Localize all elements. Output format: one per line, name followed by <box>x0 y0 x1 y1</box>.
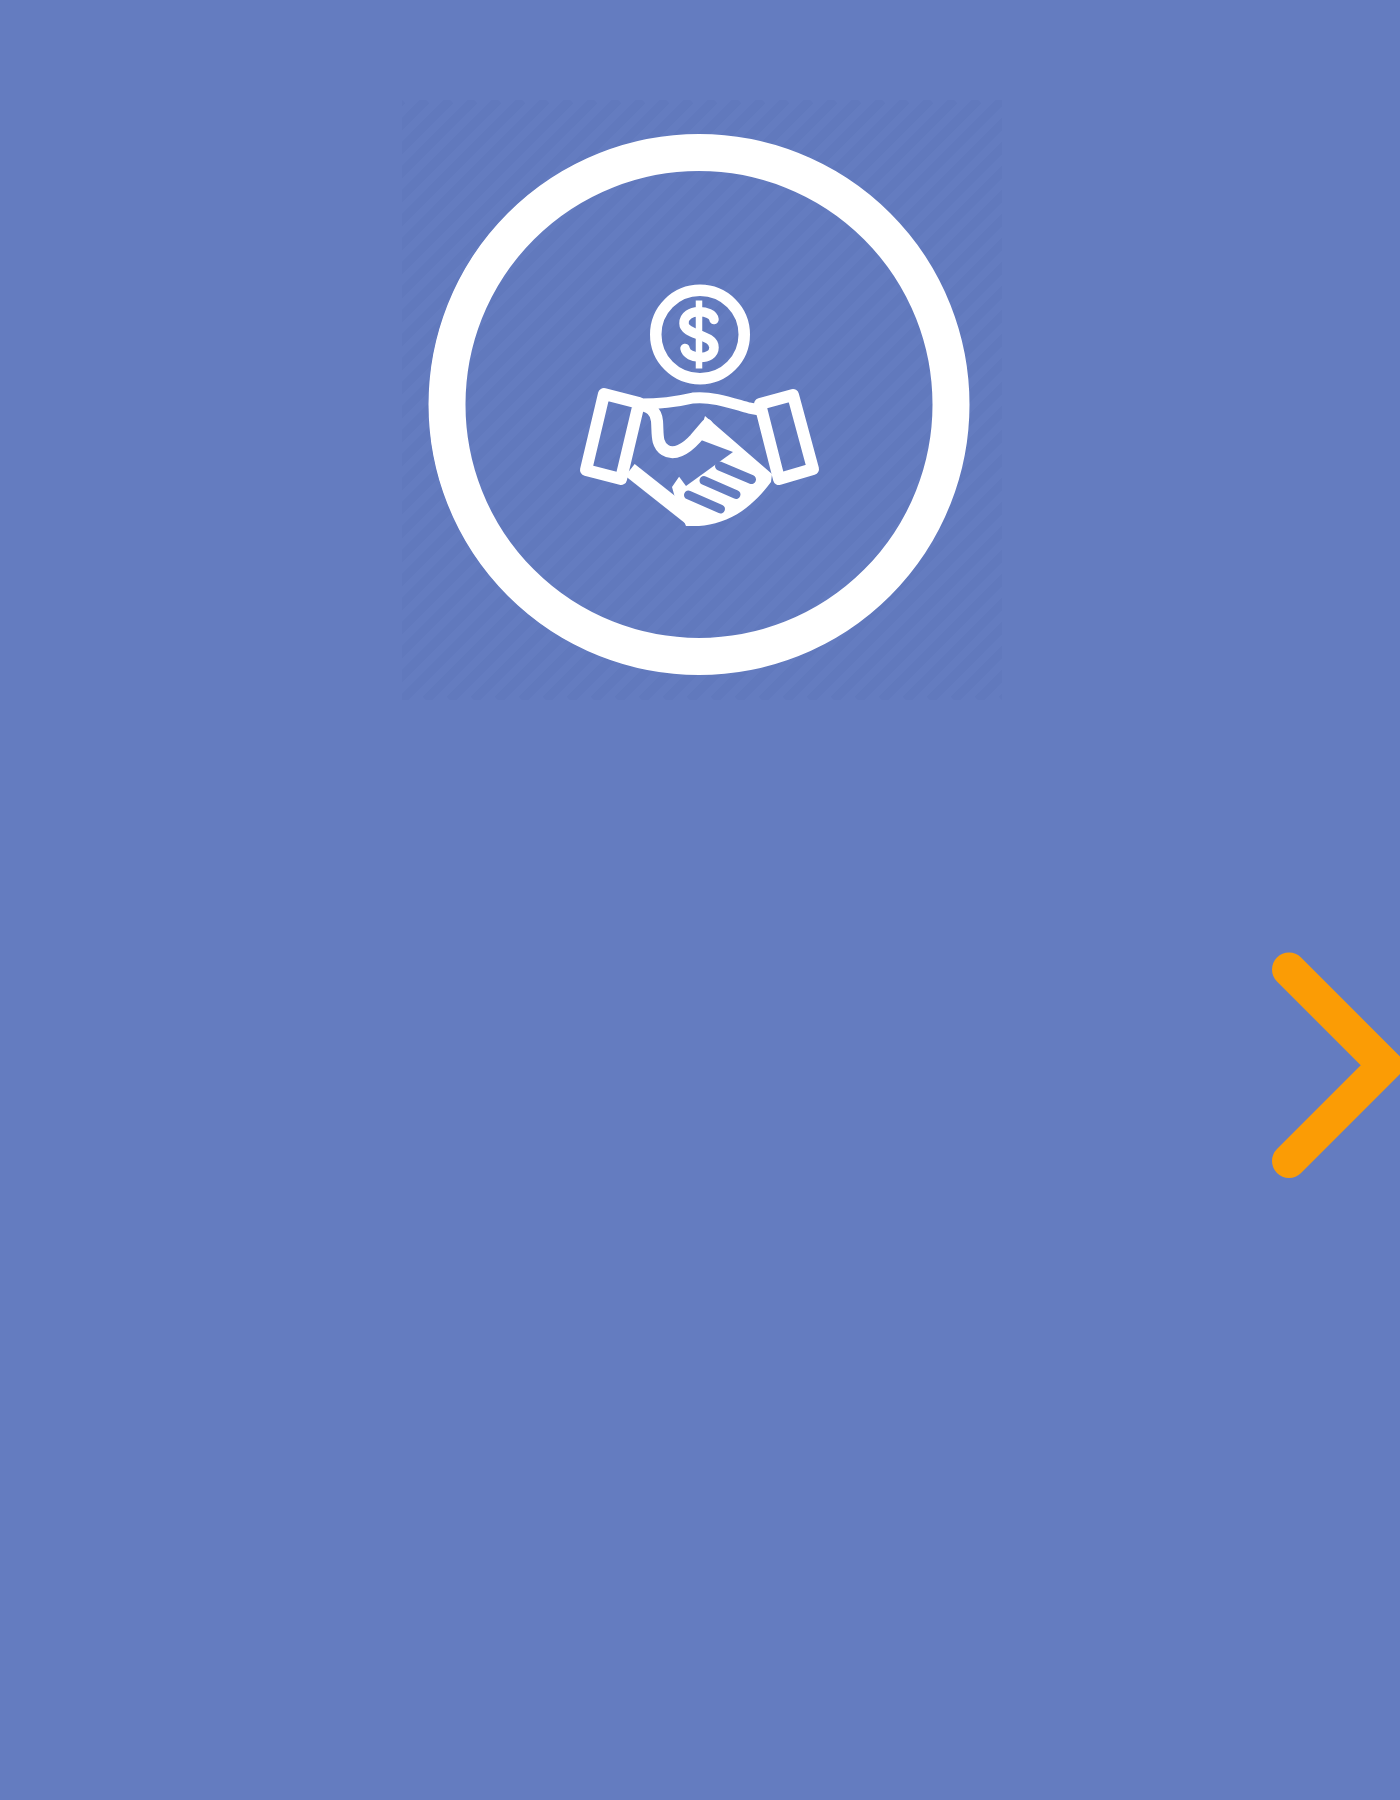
button[interactable]: Money handshake deal <box>428 133 971 676</box>
button[interactable]: Next <box>1270 950 1400 1180</box>
